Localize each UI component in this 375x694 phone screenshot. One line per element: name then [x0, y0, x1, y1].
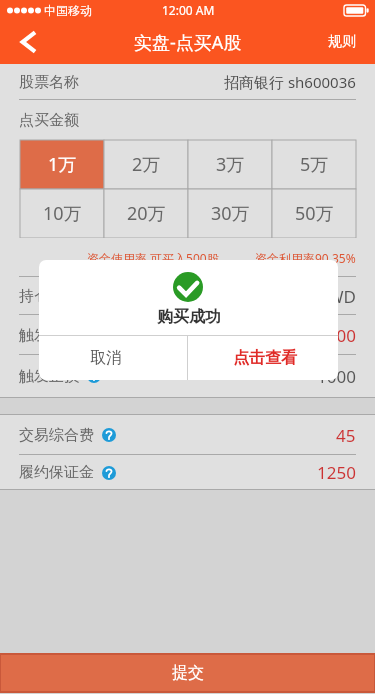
button[interactable]: 触发止损: [0, 355, 375, 397]
staticText: 10万: [43, 201, 82, 226]
staticText: 资金使用率 可买入500股: [87, 250, 219, 266]
staticText: 50万: [295, 201, 334, 226]
staticText: 1250: [317, 461, 356, 484]
staticText: 3万: [216, 152, 245, 177]
button[interactable]: 提交: [0, 654, 375, 692]
button[interactable]: 持仓期限: [0, 277, 375, 315]
staticText: 股票名称: [19, 73, 79, 92]
staticText: 交易综合费: [19, 426, 94, 445]
staticText: 2万: [132, 152, 161, 177]
staticText: 12:00 AM: [162, 2, 215, 18]
staticText: 触发止盈: [19, 326, 79, 345]
button[interactable]: 取消: [39, 336, 187, 380]
staticText: 点击查看: [233, 348, 297, 368]
staticText: 提交: [172, 663, 204, 683]
staticText: 1000: [317, 365, 356, 388]
staticText: 中国移动: [44, 3, 92, 18]
button[interactable]: 触发止盈: [0, 315, 375, 355]
staticText: 5万: [300, 152, 329, 177]
button[interactable]: 1万: [20, 140, 104, 189]
staticText: 4000: [317, 324, 356, 347]
staticText: 取消: [90, 348, 122, 368]
button[interactable]: 2万: [104, 140, 188, 189]
button[interactable]: 履约保证金: [0, 455, 375, 490]
staticText: 资金利用率90.35%: [255, 250, 356, 266]
button[interactable]: 30万: [188, 189, 272, 238]
staticText: 20万: [127, 201, 166, 226]
staticText: 持仓期限: [19, 287, 79, 306]
staticText: 3WD: [318, 285, 356, 308]
staticText: 45: [336, 424, 356, 447]
button[interactable]: 3万: [188, 140, 272, 189]
button[interactable]: 点击查看: [188, 336, 338, 380]
button[interactable]: 交易综合费: [0, 415, 375, 455]
button[interactable]: 50万: [272, 189, 356, 238]
staticText: 1万: [48, 152, 77, 177]
button[interactable]: 规则: [312, 20, 375, 64]
staticText: 30万: [211, 201, 250, 226]
button[interactable]: 5万: [272, 140, 356, 189]
button[interactable]: 10万: [20, 189, 104, 238]
button[interactable]: 返回: [0, 20, 52, 64]
button[interactable]: 股票名称: [0, 64, 375, 100]
staticText: 触发止损: [19, 367, 79, 386]
staticText: 购买成功: [157, 307, 221, 327]
staticText: 规则: [328, 33, 356, 51]
staticText: 履约保证金: [19, 463, 94, 482]
staticText: 点买金额: [19, 111, 79, 130]
button[interactable]: 20万: [104, 189, 188, 238]
staticText: 招商银行 sh600036: [224, 72, 356, 92]
staticText: 实盘-点买A股: [134, 30, 242, 55]
